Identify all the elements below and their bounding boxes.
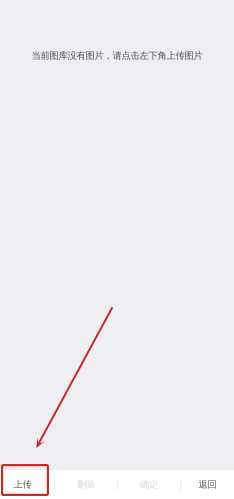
button[interactable]: 删除 <box>55 470 117 499</box>
staticText: 确定 <box>140 479 158 490</box>
staticText: 上传 <box>13 479 31 490</box>
button[interactable]: 确定 <box>118 470 180 499</box>
button[interactable]: 上传 <box>0 470 54 499</box>
staticText: 删除 <box>77 479 95 490</box>
staticText: 当前图库没有图片，请点击左下角上传图片 <box>31 50 202 61</box>
staticText: 返回 <box>198 479 216 490</box>
button[interactable]: 返回 <box>181 470 234 499</box>
